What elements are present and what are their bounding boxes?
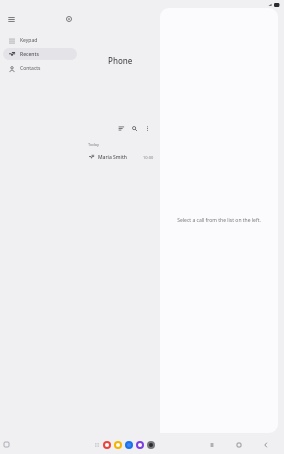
staticText: Contacts bbox=[20, 65, 41, 72]
staticText: Recents bbox=[20, 51, 39, 58]
staticText: Keypad bbox=[20, 37, 38, 44]
button[interactable]: Keypad bbox=[3, 34, 77, 46]
button[interactable]: Home bbox=[235, 441, 243, 449]
staticText: Today bbox=[88, 142, 100, 147]
button[interactable]: Camera bbox=[147, 441, 155, 449]
button[interactable]: Screenshot bbox=[3, 441, 10, 448]
button[interactable]: Settings bbox=[63, 13, 75, 25]
button[interactable]: Search bbox=[129, 123, 139, 133]
button[interactable]: Chrome bbox=[103, 441, 111, 449]
button[interactable]: Contacts bbox=[3, 62, 77, 74]
button[interactable]: Gmail bbox=[114, 441, 122, 449]
button[interactable]: All apps bbox=[94, 442, 100, 448]
button[interactable]: Maps bbox=[125, 441, 133, 449]
button[interactable]: Back bbox=[262, 441, 270, 449]
button[interactable]: Recent apps bbox=[208, 441, 216, 449]
staticText: 10:00 bbox=[143, 155, 154, 160]
button[interactable]: Menu bbox=[5, 13, 17, 25]
button[interactable]: Maria Smith bbox=[80, 151, 160, 163]
staticText: Select a call from the list on the left. bbox=[177, 217, 261, 224]
button[interactable]: More options bbox=[142, 123, 152, 133]
staticText: Maria Smith bbox=[98, 154, 127, 161]
staticText: Phone bbox=[108, 55, 133, 66]
button[interactable]: Sort bbox=[116, 123, 126, 133]
button[interactable]: Recents bbox=[3, 48, 77, 60]
button[interactable]: Photos bbox=[136, 441, 144, 449]
